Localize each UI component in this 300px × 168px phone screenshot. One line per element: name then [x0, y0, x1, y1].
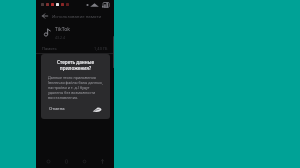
staticText: Отмена	[49, 106, 65, 112]
staticText: Стереть данные приложения?	[48, 59, 103, 71]
staticText: Память	[42, 46, 57, 51]
staticText: Использование памяти	[52, 13, 102, 19]
staticText: 43.2.4	[55, 35, 65, 40]
staticText: 1,40 ГБ	[94, 46, 108, 51]
button[interactable]: Стереть	[92, 106, 103, 113]
staticText: Данные этого приложения (включая файлы б…	[48, 75, 103, 100]
button[interactable]: Assistant	[93, 154, 111, 168]
staticText: TikTok	[55, 26, 70, 33]
button[interactable]: Назад	[40, 11, 49, 20]
button[interactable]: Отмена	[48, 104, 66, 114]
